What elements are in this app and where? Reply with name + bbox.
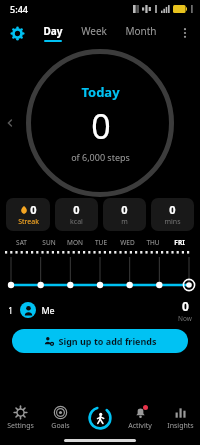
button[interactable]: Sign up to add friends: [12, 329, 188, 353]
staticText: Sign up to add friends: [58, 335, 157, 347]
button[interactable]: 0: [6, 198, 50, 231]
staticText: 1: [8, 305, 13, 316]
button[interactable]: 0: [55, 198, 98, 231]
button[interactable]: Month: [123, 22, 159, 44]
staticText: Streak: [18, 217, 39, 227]
staticText: WED: [120, 238, 135, 247]
button[interactable]: 1: [0, 297, 200, 323]
staticText: MON: [67, 238, 83, 247]
staticText: 0: [30, 202, 37, 217]
staticText: Now: [178, 314, 192, 323]
button[interactable]: Previous day: [2, 115, 18, 131]
button[interactable]: Goals: [40, 400, 80, 436]
staticText: 0: [73, 202, 80, 217]
staticText: of 6,000 steps: [71, 151, 130, 163]
button[interactable]: Activity: [120, 400, 160, 436]
button[interactable]: Week: [79, 22, 109, 44]
staticText: Insights: [167, 421, 194, 431]
staticText: Week: [81, 24, 107, 38]
staticText: TUE: [95, 238, 107, 247]
staticText: 0: [169, 202, 176, 217]
button[interactable]: 0: [151, 198, 194, 231]
staticText: mins: [164, 217, 181, 227]
staticText: 0: [121, 202, 128, 217]
staticText: Today: [81, 83, 120, 101]
button[interactable]: Day: [41, 22, 65, 44]
staticText: THU: [146, 238, 160, 247]
button[interactable]: More options: [175, 23, 195, 43]
staticText: Me: [41, 304, 55, 316]
button[interactable]: Settings: [0, 400, 40, 436]
staticText: SAT: [16, 238, 27, 247]
staticText: 0: [91, 103, 111, 149]
staticText: Month: [125, 24, 157, 38]
staticText: Goals: [51, 421, 70, 431]
staticText: kcal: [70, 217, 83, 227]
staticText: Day: [43, 24, 63, 38]
staticText: SUN: [42, 238, 56, 247]
button[interactable]: 0: [103, 198, 146, 231]
button[interactable]: Insights: [160, 400, 200, 436]
staticText: m: [121, 217, 128, 227]
staticText: 0: [182, 298, 189, 314]
button[interactable]: Settings: [6, 22, 28, 44]
staticText: FRI: [174, 238, 185, 247]
staticText: 5:44: [10, 3, 28, 15]
button[interactable]: Steps: [80, 400, 120, 436]
staticText: Activity: [128, 421, 152, 431]
staticText: Settings: [7, 421, 34, 431]
